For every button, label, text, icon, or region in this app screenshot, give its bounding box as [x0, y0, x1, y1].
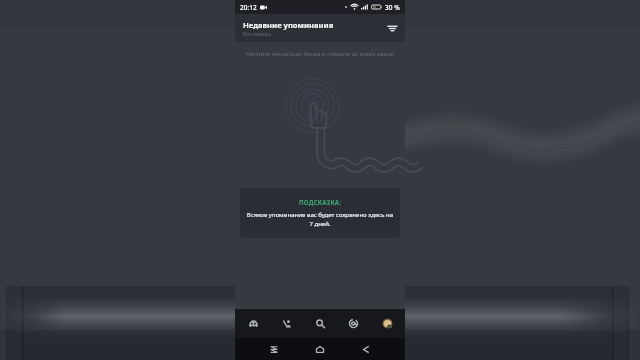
button[interactable]: ПОДСКАЗКА:: [240, 188, 400, 238]
staticText: 30 %: [385, 3, 400, 12]
staticText: Все серверы: [243, 31, 271, 37]
staticText: Недавние упоминания: [243, 20, 334, 30]
staticText: ПОДСКАЗКА:: [299, 198, 342, 206]
button[interactable]: Search: [305, 309, 335, 338]
button[interactable]: Mentions: [338, 309, 368, 338]
button[interactable]: Profile: [372, 309, 402, 338]
staticText: 20:12: [240, 3, 257, 12]
button[interactable]: Recent apps: [265, 340, 283, 358]
button[interactable]: Friends: [272, 309, 302, 338]
button[interactable]: Home: [311, 340, 329, 358]
button[interactable]: Servers: [238, 309, 268, 338]
staticText: Всякое упоминание вас будет сохранено зд…: [246, 211, 394, 228]
button[interactable]: Filter: [384, 20, 400, 36]
staticText: Начните несколько бесед и следите за ним…: [235, 50, 405, 58]
button[interactable]: Back: [357, 340, 375, 358]
